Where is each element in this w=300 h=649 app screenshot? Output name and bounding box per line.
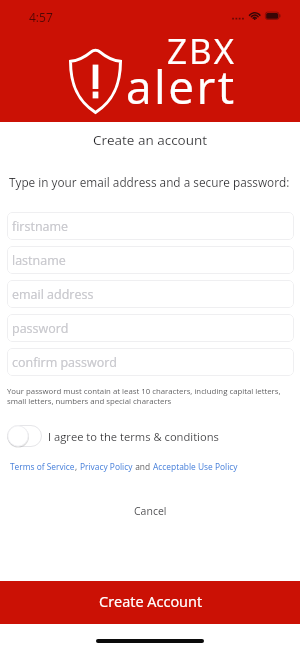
button[interactable]: Create Account [0,581,300,624]
staticText: password [12,320,69,337]
staticText: Your password must contain at least 10 c… [7,386,293,406]
staticText: lastname [12,252,66,269]
button[interactable]: Acceptable Use Policy [153,461,238,472]
staticText: Type in your email address and a secure … [9,174,290,190]
button[interactable]: I agree to the terms and conditions [0,422,300,450]
staticText: alert [126,55,237,118]
button[interactable]: Cancel [118,498,183,524]
staticText: Create an account [0,131,300,149]
staticText: ZBX [167,27,236,75]
staticText: firstname [12,218,69,235]
button[interactable]: I agree to the terms and conditions [7,425,42,447]
staticText: confirm password [12,354,117,371]
staticText: email address [12,286,94,303]
button[interactable]: confirm password [7,348,294,376]
staticText: I agree to the terms & conditions [48,429,219,444]
staticText: Create Account [99,592,203,612]
button[interactable]: Privacy Policy [80,461,133,472]
staticText: and [133,461,153,472]
staticText: 4:57 [29,9,53,25]
button[interactable]: firstname [7,212,294,240]
button[interactable]: password [7,314,294,342]
staticText: , [75,461,80,472]
button[interactable]: email address [7,280,294,308]
button[interactable]: lastname [7,246,294,274]
button[interactable]: Terms of Service [10,461,75,472]
